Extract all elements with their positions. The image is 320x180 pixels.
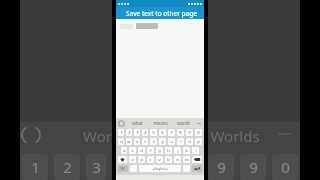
button[interactable]: 0 bbox=[195, 129, 202, 136]
staticText: b bbox=[167, 157, 170, 163]
staticText: w bbox=[127, 139, 131, 145]
staticText: !#1 bbox=[120, 166, 126, 171]
staticText: 9 bbox=[249, 157, 258, 177]
staticText: 2 bbox=[63, 157, 72, 177]
button[interactable]: h bbox=[165, 147, 172, 154]
staticText: c bbox=[149, 157, 152, 163]
button[interactable]: , bbox=[130, 165, 137, 172]
staticText: m bbox=[185, 157, 189, 163]
button[interactable]: . bbox=[183, 165, 190, 172]
button[interactable]: what bbox=[125, 120, 149, 126]
button[interactable]: l bbox=[192, 147, 199, 154]
staticText: j bbox=[177, 148, 179, 154]
staticText: v bbox=[158, 157, 161, 163]
button[interactable]: 9 bbox=[186, 129, 193, 136]
button[interactable]: !#1 bbox=[118, 165, 128, 172]
staticText: 2 bbox=[128, 130, 131, 136]
button[interactable]: 8 bbox=[177, 129, 184, 136]
staticText: 5 bbox=[152, 130, 155, 136]
button[interactable]: r bbox=[142, 138, 148, 145]
staticText: y bbox=[161, 139, 164, 145]
button[interactable]: i bbox=[177, 138, 184, 145]
button[interactable]: s bbox=[129, 147, 136, 154]
staticText: 3 bbox=[136, 130, 139, 136]
staticText: l bbox=[195, 148, 197, 154]
button[interactable]: means bbox=[149, 120, 172, 126]
button[interactable]: d bbox=[138, 147, 145, 154]
button[interactable]: w bbox=[126, 138, 132, 145]
button[interactable]: f bbox=[147, 147, 154, 154]
staticText: 0 bbox=[197, 130, 200, 136]
staticText: Save text to other page tutorial bbox=[119, 9, 204, 18]
button[interactable]: Shift bbox=[118, 156, 127, 163]
staticText: means bbox=[153, 120, 168, 126]
button[interactable]: words bbox=[172, 120, 195, 126]
staticText: . bbox=[186, 166, 188, 172]
button[interactable]: Save text to other page tutorial bbox=[116, 7, 204, 19]
button[interactable]: ◂ English ▸ bbox=[139, 165, 181, 172]
button[interactable]: Settings bbox=[118, 120, 125, 127]
staticText: 1 bbox=[31, 157, 40, 177]
staticText: g bbox=[158, 148, 161, 154]
button[interactable]: 4 bbox=[142, 129, 148, 136]
button[interactable]: 5 bbox=[150, 129, 157, 136]
staticText: p bbox=[197, 139, 200, 145]
button[interactable]: k bbox=[183, 147, 190, 154]
staticText: 6 bbox=[161, 130, 164, 136]
button[interactable]: y bbox=[159, 138, 166, 145]
button[interactable]: t bbox=[150, 138, 157, 145]
staticText: 9 bbox=[188, 130, 191, 136]
staticText: a bbox=[123, 148, 126, 154]
button[interactable]: e bbox=[134, 138, 140, 145]
button[interactable]: z bbox=[129, 156, 136, 163]
staticText: 9 bbox=[217, 157, 226, 177]
staticText: e bbox=[136, 139, 139, 145]
staticText: h bbox=[167, 148, 170, 154]
staticText: k bbox=[185, 148, 188, 154]
button[interactable]: 2 bbox=[126, 129, 132, 136]
staticText: t bbox=[153, 139, 155, 145]
staticText: o bbox=[188, 139, 191, 145]
button[interactable]: 3 bbox=[134, 129, 140, 136]
button[interactable]: g bbox=[156, 147, 163, 154]
button[interactable]: b bbox=[165, 156, 172, 163]
button[interactable]: More suggestions bbox=[195, 123, 202, 124]
staticText: u bbox=[170, 139, 173, 145]
button[interactable]: a bbox=[121, 147, 127, 154]
button[interactable]: m bbox=[183, 156, 190, 163]
button[interactable]: v bbox=[156, 156, 163, 163]
staticText: s bbox=[131, 148, 134, 154]
staticText: what bbox=[132, 120, 143, 126]
button[interactable]: p bbox=[195, 138, 202, 145]
button[interactable]: j bbox=[174, 147, 181, 154]
button[interactable]: 7 bbox=[168, 129, 175, 136]
staticText: Worlds bbox=[210, 126, 260, 146]
button[interactable]: n bbox=[174, 156, 181, 163]
staticText: ◂ English ▸ bbox=[152, 167, 168, 171]
button[interactable]: 6 bbox=[159, 129, 166, 136]
button[interactable]: Backspace bbox=[192, 156, 202, 163]
staticText: 3 bbox=[92, 157, 101, 177]
staticText: d bbox=[140, 148, 143, 154]
staticText: Wor bbox=[83, 126, 112, 146]
button[interactable]: q bbox=[118, 138, 124, 145]
button[interactable]: x bbox=[138, 156, 145, 163]
staticText: 7 bbox=[170, 130, 173, 136]
staticText: i bbox=[180, 139, 182, 145]
staticText: q bbox=[120, 139, 123, 145]
staticText: words bbox=[177, 120, 190, 126]
staticText: z bbox=[132, 157, 134, 163]
button[interactable]: Enter bbox=[192, 165, 202, 172]
staticText: 0 bbox=[281, 157, 290, 177]
staticText: f bbox=[150, 148, 152, 154]
button[interactable]: 1 bbox=[118, 129, 124, 136]
staticText: 4 bbox=[144, 130, 147, 136]
staticText: n bbox=[176, 157, 179, 163]
staticText: 8 bbox=[179, 130, 182, 136]
button[interactable]: u bbox=[168, 138, 175, 145]
staticText: r bbox=[144, 139, 146, 145]
button[interactable]: o bbox=[186, 138, 193, 145]
button[interactable]: c bbox=[147, 156, 154, 163]
